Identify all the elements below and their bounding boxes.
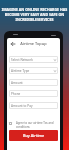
staticText: Select Network [11,58,33,62]
staticText: Agree to our airtime Tos and conditions [16,121,54,129]
button[interactable]: Select Network [9,56,58,63]
staticText: Amount [11,81,23,85]
staticText: Amount to Pay [11,104,33,108]
button[interactable]: Buy Airtime [9,130,58,141]
staticText: Airtime Topup [7,41,60,46]
staticText: Buy Airtime [23,133,45,138]
staticText: Phone [11,92,21,96]
button[interactable]: Back [9,40,16,47]
button[interactable]: Agree to our airtime Tos and conditions [9,121,58,129]
staticText: IMAGINE AN ONLINE RECHARGE HAS BECOME VE… [1,7,68,22]
button[interactable]: Airtime Type [9,67,58,74]
button[interactable]: Phone [9,90,58,97]
button[interactable]: Amount [9,79,58,86]
button[interactable]: Amount to Pay [9,102,58,109]
staticText: Airtime Type [11,69,30,73]
